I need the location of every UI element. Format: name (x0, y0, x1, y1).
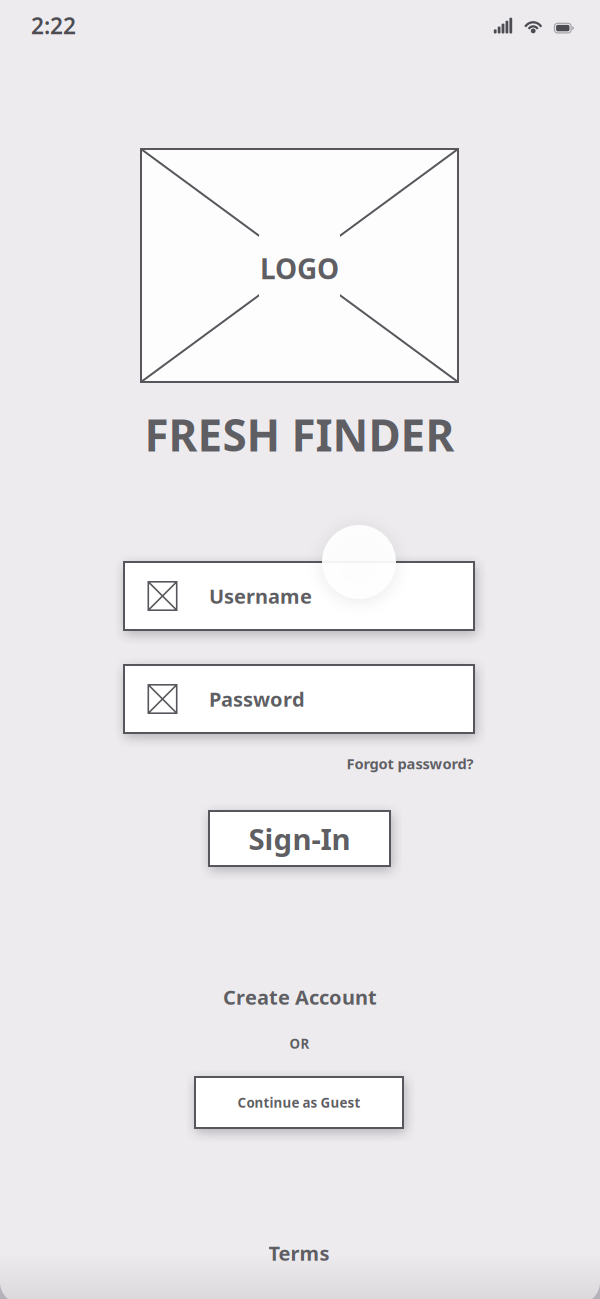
staticText: LOGO (260, 250, 339, 287)
staticText: Sign-In (248, 819, 350, 858)
button[interactable]: Username (124, 562, 474, 630)
staticText: Password (209, 686, 305, 712)
staticText: Create Account (223, 984, 377, 1010)
staticText: Continue as Guest (237, 1094, 360, 1111)
button[interactable]: Terms (268, 1240, 329, 1266)
staticText: Username (209, 583, 312, 609)
staticText: Forgot password? (346, 754, 473, 773)
button[interactable]: Password (124, 665, 474, 733)
button[interactable]: Create Account (223, 984, 377, 1010)
staticText: Terms (268, 1240, 329, 1266)
button[interactable]: Continue as Guest (195, 1077, 403, 1128)
staticText: FRESH FINDER (144, 405, 454, 464)
staticText: OR (289, 1035, 309, 1052)
button[interactable]: Forgot password? (346, 754, 473, 773)
staticText: 2:22 (31, 10, 76, 40)
button[interactable]: Sign-In (209, 811, 390, 866)
